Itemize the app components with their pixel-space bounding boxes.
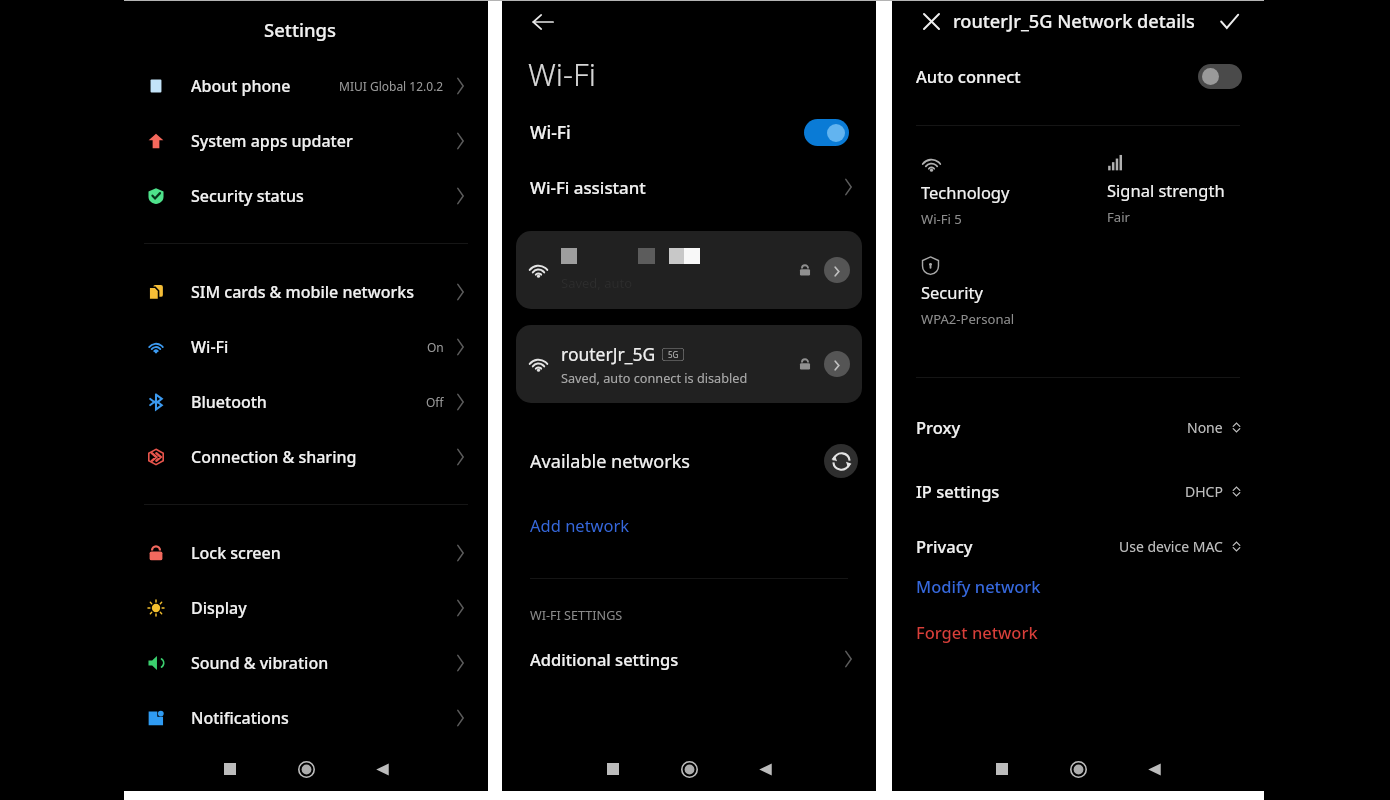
button[interactable]: Lock screen	[124, 525, 488, 580]
button[interactable]: Back	[361, 748, 403, 790]
button[interactable]: System apps updater	[124, 113, 488, 168]
button[interactable]: Sound & vibration	[124, 635, 488, 690]
button[interactable]: Notifications	[124, 690, 488, 745]
button[interactable]: Wi-Fi	[502, 113, 876, 151]
staticText: Saved, auto connect is disabled	[561, 369, 748, 386]
button[interactable]: Home	[668, 748, 710, 790]
staticText: Bluetooth	[191, 391, 267, 413]
button[interactable]: Connection & sharing	[124, 429, 488, 484]
staticText: IP settings	[916, 480, 1000, 502]
button[interactable]: Modify network	[892, 572, 1264, 600]
button[interactable]: Wi-Fi assistant	[502, 168, 876, 206]
button[interactable]: Add network	[502, 511, 876, 539]
staticText: None	[1187, 418, 1223, 437]
button[interactable]: Display	[124, 580, 488, 635]
button[interactable]: Recents	[209, 748, 251, 790]
staticText: Proxy	[916, 416, 961, 438]
button[interactable]: Refresh	[824, 444, 858, 478]
staticText: Sound & vibration	[191, 652, 329, 674]
staticText: SIM cards & mobile networks	[191, 281, 414, 303]
button[interactable]: SIM cards & mobile networks	[124, 264, 488, 319]
staticText: Available networks	[530, 449, 690, 474]
button[interactable]: Home	[285, 748, 327, 790]
staticText: MIUI Global 12.0.2	[339, 78, 444, 94]
staticText: Use device MAC	[1119, 537, 1223, 556]
staticText: Saved, auto	[561, 274, 633, 292]
staticText: Notifications	[191, 707, 289, 729]
button[interactable]: Back	[744, 748, 786, 790]
staticText: Security	[921, 281, 983, 303]
button[interactable]: Home	[1057, 748, 1099, 790]
staticText: WI-FI SETTINGS	[530, 607, 623, 624]
button[interactable]: Network details	[824, 257, 850, 283]
button[interactable]: Security status	[124, 168, 488, 223]
button[interactable]: Forget network	[892, 618, 1264, 646]
staticText: Fair	[1107, 208, 1130, 226]
staticText: Lock screen	[191, 542, 281, 564]
staticText: Modify network	[916, 575, 1041, 597]
button[interactable]: Wi-Fi	[124, 319, 488, 374]
staticText: Off	[426, 394, 444, 410]
button[interactable]: Back	[1133, 748, 1175, 790]
button[interactable]: Close	[918, 8, 944, 34]
staticText: Wi-Fi	[191, 336, 229, 358]
staticText: Forget network	[916, 621, 1038, 643]
staticText: routerJr_5G Network details	[953, 9, 1195, 34]
staticText: DHCP	[1185, 482, 1223, 501]
button[interactable]: Recents	[981, 748, 1023, 790]
staticText: routerJr_5G	[561, 342, 656, 366]
button[interactable]: IP settings	[892, 479, 1264, 503]
staticText: Wi-Fi	[530, 120, 571, 144]
button[interactable]: Network details	[824, 351, 850, 377]
staticText: Connection & sharing	[191, 446, 357, 468]
button[interactable]: Proxy	[892, 415, 1264, 439]
staticText: Auto connect	[916, 65, 1021, 87]
button[interactable]: Saved, auto	[516, 231, 862, 309]
staticText: Add network	[530, 514, 630, 536]
staticText: Additional settings	[530, 648, 679, 670]
staticText: Security status	[191, 185, 304, 207]
button[interactable]: Additional settings	[502, 644, 876, 674]
button[interactable]: Privacy	[892, 534, 1264, 558]
staticText: Technology	[921, 181, 1010, 203]
button[interactable]: Auto connect	[892, 57, 1264, 95]
staticText: Privacy	[916, 535, 973, 557]
button[interactable]: Recents	[592, 748, 634, 790]
staticText: On	[427, 339, 444, 355]
staticText: Display	[191, 597, 247, 619]
button[interactable]: About phone	[124, 58, 488, 113]
button[interactable]: routerJr_5G	[516, 325, 862, 403]
staticText: Settings	[264, 17, 337, 42]
staticText: Wi-Fi assistant	[530, 176, 646, 199]
button[interactable]: Bluetooth	[124, 374, 488, 429]
button[interactable]: Save	[1215, 7, 1243, 35]
staticText: 5G	[668, 349, 679, 360]
staticText: Signal strength	[1107, 179, 1225, 201]
staticText: Wi-Fi	[528, 53, 596, 93]
staticText: System apps updater	[191, 130, 353, 152]
staticText: WPA2-Personal	[921, 310, 1015, 328]
staticText: Wi-Fi 5	[921, 210, 962, 228]
button[interactable]: Back	[526, 5, 560, 39]
staticText: About phone	[191, 75, 291, 97]
